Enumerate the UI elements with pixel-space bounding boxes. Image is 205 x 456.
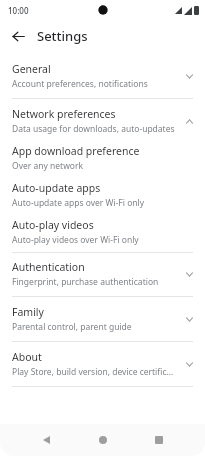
button[interactable]: Back xyxy=(34,428,58,452)
button[interactable]: Network preferences xyxy=(0,103,205,139)
button[interactable]: Home xyxy=(91,428,115,452)
button[interactable]: Authentication xyxy=(0,256,205,292)
button[interactable]: About xyxy=(0,346,205,382)
button[interactable]: Back xyxy=(4,22,32,50)
staticText: About xyxy=(12,350,42,364)
staticText: Network preferences xyxy=(12,107,116,121)
button[interactable]: Auto-play videos xyxy=(0,215,205,249)
button[interactable]: Recent apps xyxy=(147,428,171,452)
staticText: Fingerprint, purchase authentication xyxy=(12,276,159,288)
staticText: Auto-play videos over Wi-Fi only xyxy=(12,234,139,246)
staticText: Settings xyxy=(37,27,88,45)
staticText: Parental control, parent guide xyxy=(12,321,132,333)
staticText: Authentication xyxy=(12,260,85,274)
staticText: Auto-update apps xyxy=(12,181,101,195)
staticText: General xyxy=(12,62,51,76)
button[interactable]: General xyxy=(0,58,205,94)
button[interactable]: Family xyxy=(0,301,205,337)
button[interactable]: App download preference xyxy=(0,141,205,175)
staticText: 10:00 xyxy=(8,5,29,16)
staticText: Family xyxy=(12,305,44,319)
staticText: Account preferences, notifications xyxy=(12,78,148,90)
staticText: Data usage for downloads, auto-updates xyxy=(12,123,175,135)
staticText: Auto-play videos xyxy=(12,218,94,232)
staticText: App download preference xyxy=(12,144,140,158)
staticText: Auto-update apps over Wi-Fi only xyxy=(12,197,145,209)
staticText: Play Store, build version, device certif… xyxy=(12,366,178,378)
button[interactable]: Auto-update apps xyxy=(0,178,205,212)
staticText: Over any network xyxy=(12,160,84,172)
